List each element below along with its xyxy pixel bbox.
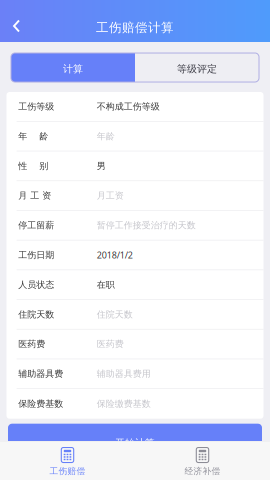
- staticText: 保险费基数: [18, 398, 63, 409]
- staticText: 年龄: [97, 130, 115, 142]
- button[interactable]: 返回: [0, 10, 33, 42]
- button[interactable]: 经济补偿: [135, 441, 270, 480]
- staticText: 不构成工伤等级: [97, 101, 160, 112]
- staticText: 工伤赔偿计算: [96, 20, 174, 35]
- button[interactable]: 性 别: [6, 151, 263, 181]
- staticText: 开始计算: [115, 437, 155, 449]
- staticText: 工伤日期: [18, 249, 54, 261]
- staticText: 性 别: [18, 160, 48, 171]
- button[interactable]: 停工留薪: [6, 211, 263, 240]
- button[interactable]: 工伤赔偿: [0, 441, 135, 480]
- staticText: 月工资: [97, 190, 124, 201]
- button[interactable]: 医药费: [6, 330, 263, 359]
- staticText: 暂停工作接受治疗的天数: [97, 220, 196, 231]
- button[interactable]: 月 工 资: [6, 181, 263, 211]
- staticText: 工伤赔偿: [49, 465, 85, 476]
- staticText: 住院天数: [18, 309, 54, 320]
- staticText: 年 龄: [18, 130, 48, 142]
- staticText: 辅助器具费用: [97, 368, 151, 379]
- button[interactable]: 人员状态: [6, 270, 263, 300]
- staticText: 医药费: [18, 338, 45, 350]
- staticText: 停工留薪: [18, 220, 54, 231]
- button[interactable]: 辅助器具费: [6, 359, 263, 389]
- staticText: 辅助器具费: [18, 368, 63, 379]
- staticText: 男: [97, 160, 106, 171]
- staticText: 医药费: [97, 338, 124, 350]
- staticText: 月 工 资: [18, 190, 51, 201]
- staticText: 保险缴费基数: [97, 398, 151, 409]
- staticText: 计算: [63, 63, 83, 75]
- button[interactable]: 工伤日期: [6, 240, 263, 270]
- staticText: 住院天数: [97, 309, 133, 320]
- button[interactable]: 保险费基数: [6, 389, 263, 419]
- staticText: 工伤等级: [18, 101, 54, 112]
- staticText: 人员状态: [18, 279, 54, 290]
- staticText: 在职: [97, 279, 115, 290]
- button[interactable]: 年 龄: [6, 122, 263, 151]
- staticText: 等级评定: [177, 63, 217, 75]
- staticText: 2018/1/2: [97, 249, 133, 261]
- staticText: 经济补偿: [184, 465, 220, 476]
- button[interactable]: 工伤等级: [6, 92, 263, 122]
- button[interactable]: 开始计算: [0, 424, 270, 462]
- button[interactable]: 等级评定: [135, 53, 259, 82]
- button[interactable]: 计算: [11, 53, 135, 82]
- button[interactable]: 住院天数: [6, 300, 263, 330]
